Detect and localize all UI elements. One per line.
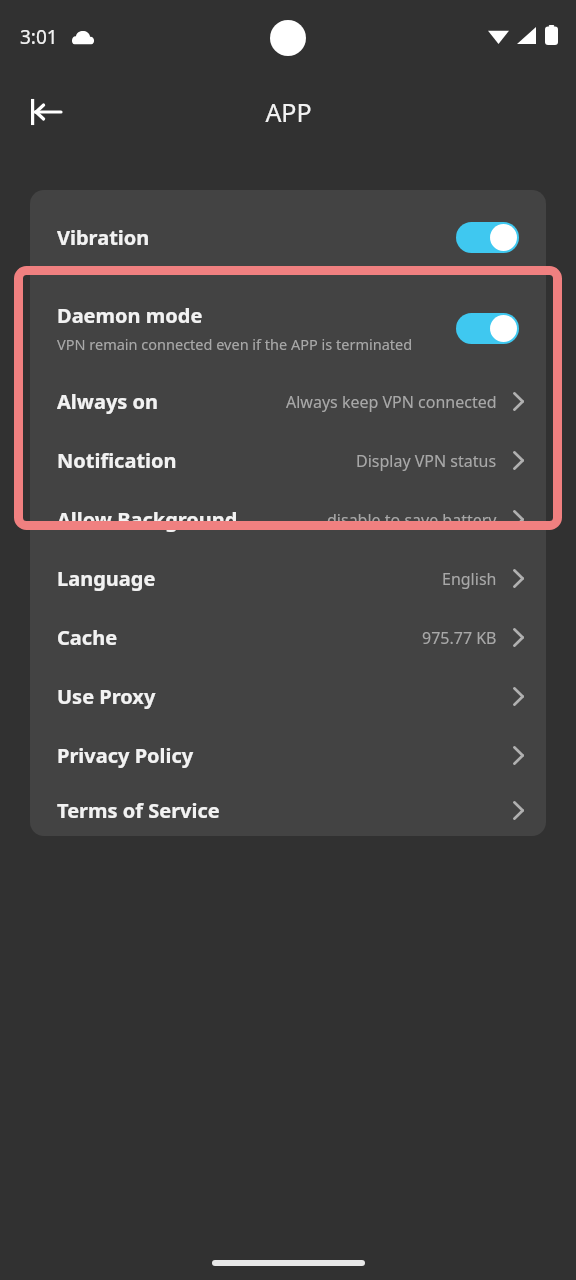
- staticText: disable to save battery: [327, 509, 497, 531]
- button[interactable]: Vibration: [30, 208, 546, 266]
- staticText: VPN remain connected even if the APP is …: [57, 334, 413, 354]
- staticText: Daemon mode: [57, 302, 203, 329]
- staticText: Cache: [57, 624, 118, 651]
- button[interactable]: Allow Background: [30, 490, 546, 549]
- button[interactable]: Privacy Policy: [30, 726, 546, 785]
- staticText: Always keep VPN connected: [286, 391, 497, 413]
- staticText: 3:01: [20, 24, 58, 50]
- staticText: Language: [57, 565, 156, 592]
- staticText: Terms of Service: [57, 797, 220, 824]
- button[interactable]: Toggle: [456, 222, 519, 253]
- staticText: English: [442, 568, 497, 590]
- staticText: Display VPN status: [356, 450, 497, 472]
- button[interactable]: Notification: [30, 431, 546, 490]
- button[interactable]: Daemon mode: [30, 296, 546, 360]
- staticText: Allow Background: [57, 506, 238, 533]
- button[interactable]: Back: [18, 84, 74, 140]
- staticText: 975.77 KB: [422, 627, 497, 649]
- button[interactable]: Toggle: [456, 313, 519, 344]
- staticText: Notification: [57, 447, 177, 474]
- button[interactable]: Terms of Service: [30, 785, 546, 836]
- staticText: Privacy Policy: [57, 742, 194, 769]
- staticText: APP: [265, 95, 312, 129]
- staticText: Use Proxy: [57, 683, 156, 710]
- button[interactable]: Always on: [30, 372, 546, 431]
- button[interactable]: Language: [30, 549, 546, 608]
- staticText: Always on: [57, 388, 159, 415]
- button[interactable]: Use Proxy: [30, 667, 546, 726]
- button[interactable]: Cache: [30, 608, 546, 667]
- staticText: Vibration: [57, 224, 150, 251]
